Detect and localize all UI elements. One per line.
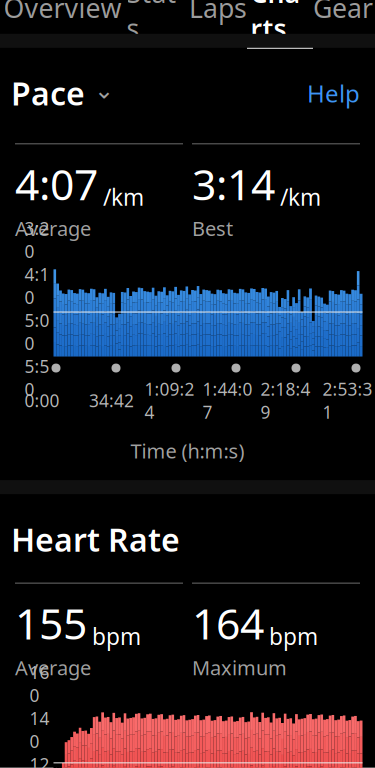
staticText: 34:42 [89, 389, 134, 412]
staticText: 0:00 [24, 389, 59, 412]
staticText: 2:18:49 [260, 377, 310, 423]
staticText: /km [103, 182, 144, 212]
staticText: Laps [189, 0, 247, 25]
staticText: Charts [250, 0, 309, 46]
staticText: Help [307, 77, 360, 109]
button[interactable]: Gear [311, 0, 375, 34]
staticText: ⌄ [94, 76, 114, 104]
staticText: 4:07 [15, 155, 98, 212]
staticText: 2:53:31 [322, 377, 372, 423]
staticText: Overview [3, 0, 121, 25]
staticText: Heart Rate [11, 518, 180, 561]
staticText: bpm [92, 621, 141, 651]
staticText: 120 [29, 753, 49, 768]
staticText: 155 [15, 595, 87, 651]
staticText: 1:44:07 [202, 377, 252, 423]
button[interactable]: Laps [187, 0, 249, 34]
staticText: 164 [192, 595, 264, 651]
staticText: 3:20 [24, 217, 49, 263]
staticText: Average [15, 215, 91, 242]
staticText: Average [15, 654, 91, 681]
staticText: 1:09:24 [144, 377, 194, 423]
staticText: 5:50 [24, 355, 49, 401]
staticText: Maximum [192, 654, 287, 681]
staticText: Pace [11, 72, 85, 114]
staticText: 140 [29, 707, 49, 753]
staticText: 3:14 [192, 155, 275, 212]
staticText: Stats [126, 0, 185, 46]
button[interactable]: Stats [125, 0, 187, 34]
button[interactable]: Charts [249, 0, 311, 34]
staticText: /km [280, 182, 321, 212]
staticText: bpm [269, 621, 318, 651]
button[interactable]: Overview [0, 0, 125, 34]
staticText: Gear [313, 0, 373, 25]
staticText: Time (h:m:s) [130, 438, 244, 464]
staticText: Best [192, 215, 233, 242]
button[interactable]: Help [303, 69, 364, 117]
staticText: 4:10 [24, 263, 49, 309]
staticText: 5:00 [24, 309, 49, 355]
staticText: 160 [29, 661, 49, 707]
button[interactable]: Pace [11, 64, 114, 122]
